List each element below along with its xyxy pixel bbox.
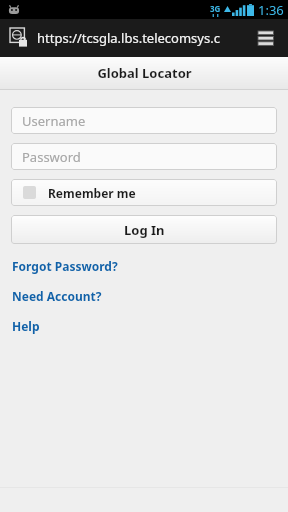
button[interactable]: Forgot Password? <box>0 258 288 274</box>
staticText: 1:36 <box>258 1 284 19</box>
button[interactable]: Log In <box>11 215 277 244</box>
staticText: Log In <box>124 221 165 239</box>
staticText: Forgot Password? <box>12 258 118 274</box>
button[interactable]: Site security info <box>10 28 30 48</box>
staticText: Username <box>22 112 86 130</box>
staticText: Global Locator <box>97 64 192 82</box>
staticText: Help <box>12 318 40 334</box>
staticText: Need Account? <box>12 288 102 304</box>
button[interactable]: Password <box>11 143 277 170</box>
staticText: https://tcsgla.lbs.telecomsys.c <box>37 29 250 47</box>
staticText: Remember me <box>48 185 136 201</box>
button[interactable]: Remember me <box>11 179 277 206</box>
staticText: Password <box>22 148 81 166</box>
button[interactable]: Help <box>0 318 288 334</box>
button[interactable]: Need Account? <box>0 288 288 304</box>
button[interactable]: Username <box>11 107 277 134</box>
staticText: 3G <box>210 3 221 14</box>
button[interactable]: Tabs <box>250 21 284 55</box>
